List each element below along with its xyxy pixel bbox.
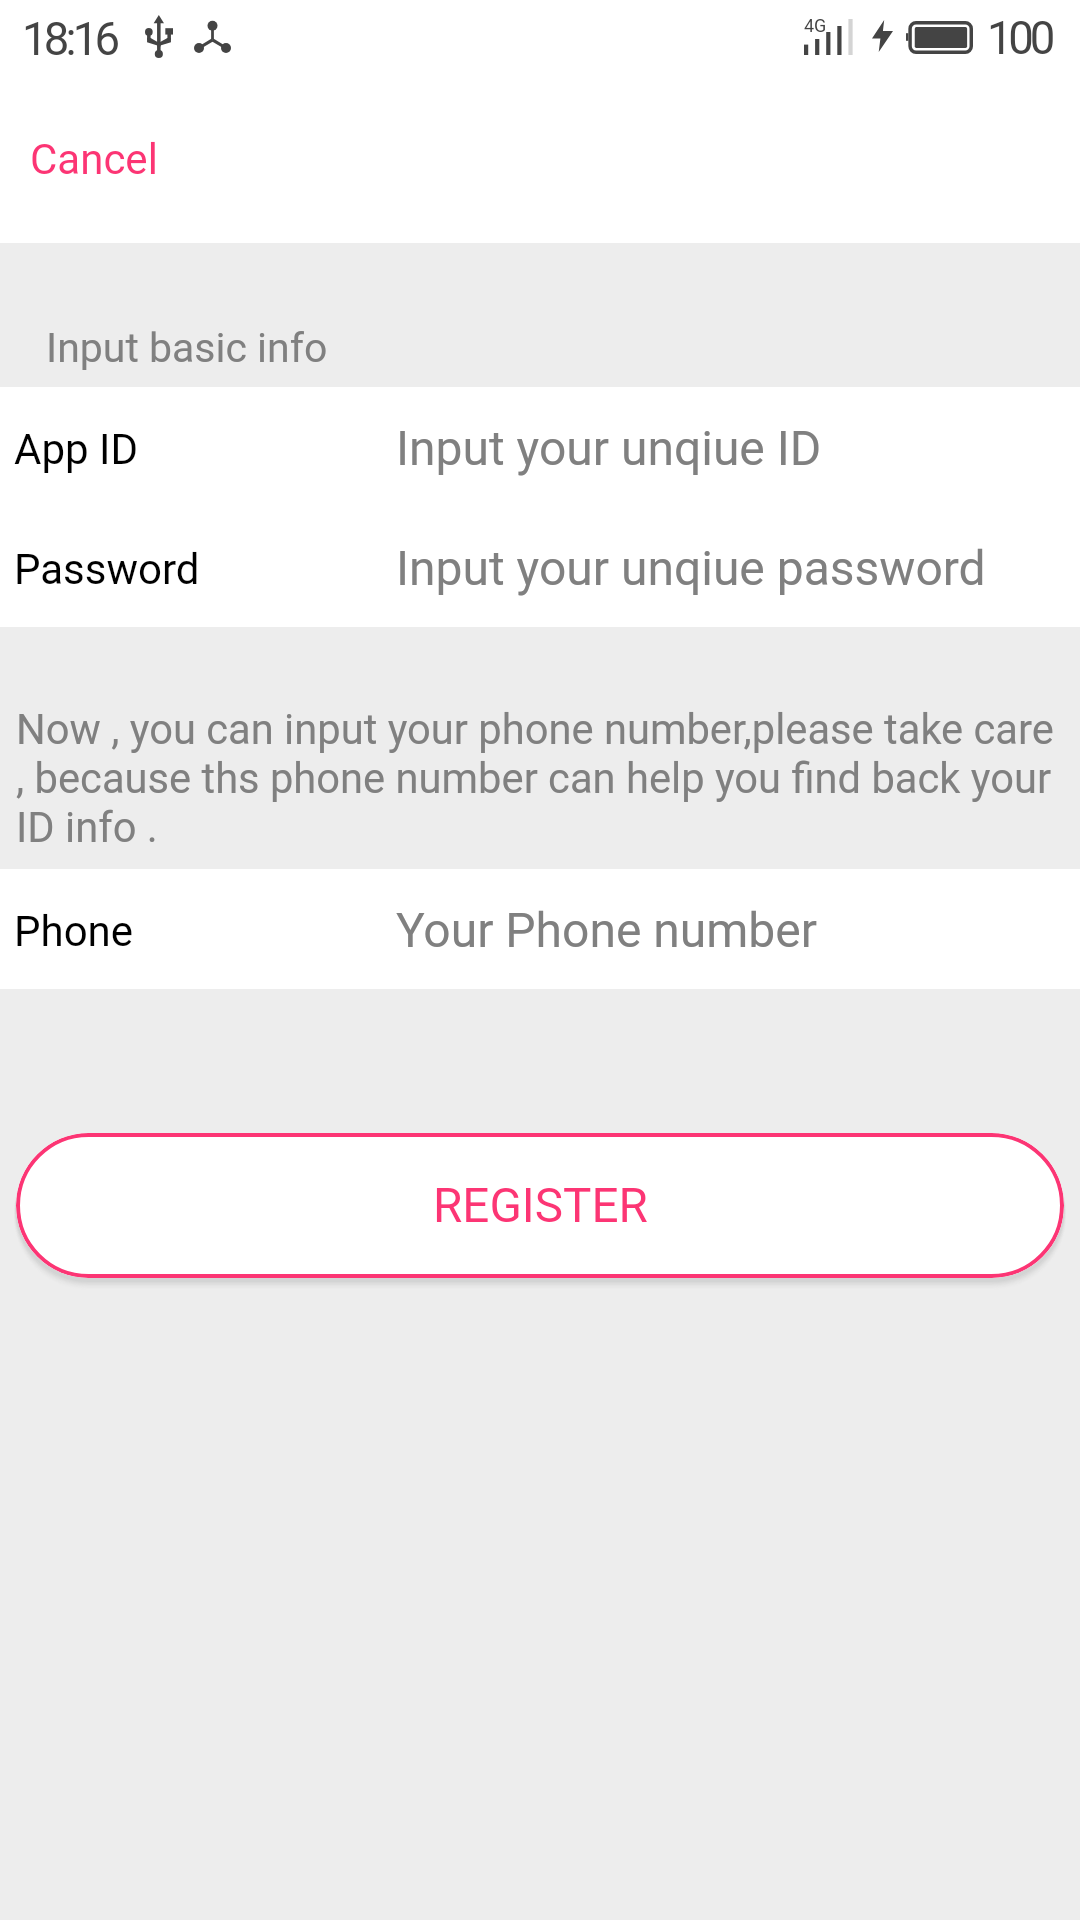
button[interactable]: Cancel [0,80,192,218]
other: Charging [872,20,893,52]
other: 4G signal strength [804,16,856,56]
staticText: Password [14,545,200,594]
staticText: App ID [14,425,138,474]
staticText: Cancel [30,135,158,184]
button[interactable]: App ID [0,387,1080,507]
staticText: Now , you can input your phone number,pl… [16,705,1054,852]
staticText: Phone [14,907,134,956]
staticText: Your Phone number [396,902,818,958]
staticText: 4G [804,15,827,36]
button[interactable]: Password [0,507,1080,627]
staticText: REGISTER [433,1178,648,1234]
other: Battery full [906,21,973,54]
button[interactable]: Phone [0,869,1080,989]
staticText: Input your unqiue password [396,540,986,596]
button[interactable]: REGISTER [16,1133,1064,1278]
staticText: Input your unqiue ID [396,420,822,476]
other: Network sharing [194,20,231,53]
staticText: 100 [987,12,1052,65]
other: USB connected [145,15,173,59]
staticText: Input basic info [46,324,328,372]
staticText: 18:16 [22,13,117,66]
